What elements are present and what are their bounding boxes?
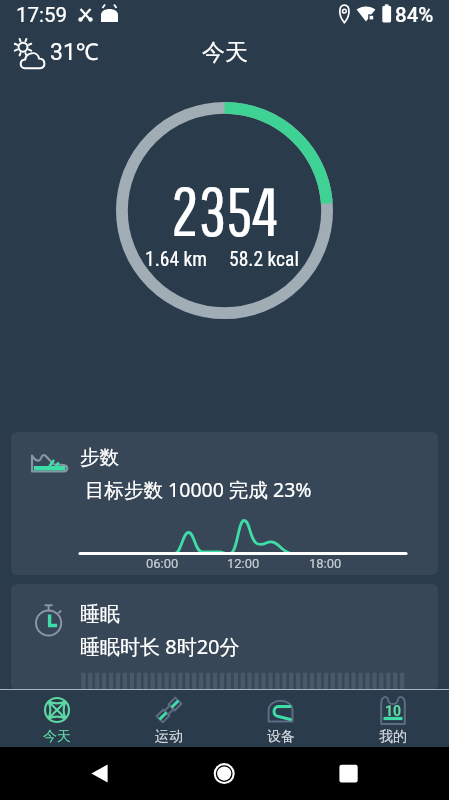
button[interactable]: Weather 31 degrees [9,33,99,69]
button[interactable]: Recents [311,747,386,800]
staticText: 我的 [379,728,407,746]
staticText: 步数 [80,445,119,470]
staticText: 设备 [267,728,295,746]
staticText: 运动 [155,728,183,746]
button[interactable]: Home [187,747,262,800]
staticText: 31℃ [50,35,99,66]
staticText: 84% [395,3,434,27]
staticText: 1.64 km [145,248,207,271]
staticText: 06:00 [146,556,179,571]
button[interactable]: 今天 [0,690,113,747]
button[interactable]: 设备 [225,690,337,747]
staticText: 17:59 [16,3,68,27]
staticText: 2354 [171,171,279,250]
staticText: 睡眠时长 8时20分 [80,633,240,660]
staticText: 12:00 [227,556,260,571]
button[interactable]: Back [62,747,137,800]
staticText: 今天 [202,38,248,67]
staticText: 18:00 [309,556,342,571]
staticText: 目标步数 10000 完成 23% [85,476,312,503]
button[interactable]: 睡眠 [11,584,438,690]
staticText: 今天 [43,728,71,746]
staticText: 睡眠 [80,602,120,627]
button[interactable]: 我的 [337,690,449,747]
button[interactable]: 步数 [11,432,438,575]
staticText: 10 [385,703,402,719]
button[interactable]: 运动 [113,690,225,747]
staticText: 58.2 kcal [229,248,299,271]
